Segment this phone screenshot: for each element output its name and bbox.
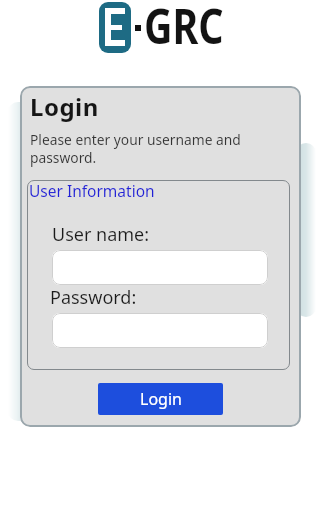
staticText: User Information <box>29 180 155 201</box>
button[interactable] <box>52 313 268 348</box>
staticText: Login <box>140 388 182 410</box>
staticText: GRC <box>144 0 224 58</box>
staticText: Password: <box>50 285 137 310</box>
button[interactable] <box>52 250 268 285</box>
staticText: Login <box>30 90 99 123</box>
staticText: User name: <box>52 222 150 247</box>
staticText: Please enter your username and password. <box>30 130 241 167</box>
button[interactable]: Login <box>98 383 223 415</box>
